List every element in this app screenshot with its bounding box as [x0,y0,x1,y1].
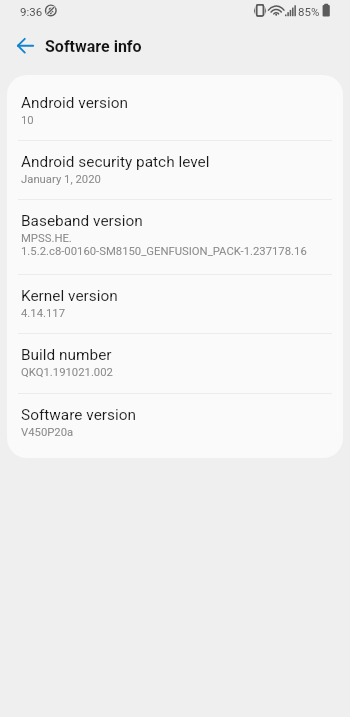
button[interactable]: Android security patch level [7,141,343,199]
staticText: QKQ1.191021.002 [21,366,113,379]
staticText: 10 [21,114,34,127]
staticText: January 1, 2020 [21,173,101,186]
button[interactable]: Android version [7,75,343,140]
staticText: Baseband version [21,212,143,230]
button[interactable]: Baseband version [7,200,343,274]
staticText: Kernel version [21,287,118,305]
staticText: 9:36 [20,5,43,18]
staticText: Android version [21,94,128,112]
button[interactable]: Software version [7,394,343,458]
button[interactable]: Back [0,22,44,63]
button[interactable]: Kernel version [7,275,343,333]
staticText: Android security patch level [21,153,210,171]
staticText: Software info [45,37,142,56]
staticText: V450P20a [21,426,74,439]
staticText: MPSS.HE. [21,232,72,245]
staticText: 4.14.117 [21,307,66,320]
staticText: Build number [21,346,112,364]
staticText: Software version [21,406,136,424]
button[interactable]: Build number [7,334,343,393]
staticText: 85% [298,5,320,18]
staticText: 1.5.2.c8-00160-SM8150_GENFUSION_PACK-1.2… [21,245,307,258]
